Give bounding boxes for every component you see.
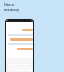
button[interactable] [17, 48, 33, 50]
staticText: Has a memory [4, 2, 20, 12]
button[interactable] [22, 29, 33, 31]
button[interactable]: Keyboard [6, 58, 33, 72]
button[interactable] [10, 38, 33, 41]
